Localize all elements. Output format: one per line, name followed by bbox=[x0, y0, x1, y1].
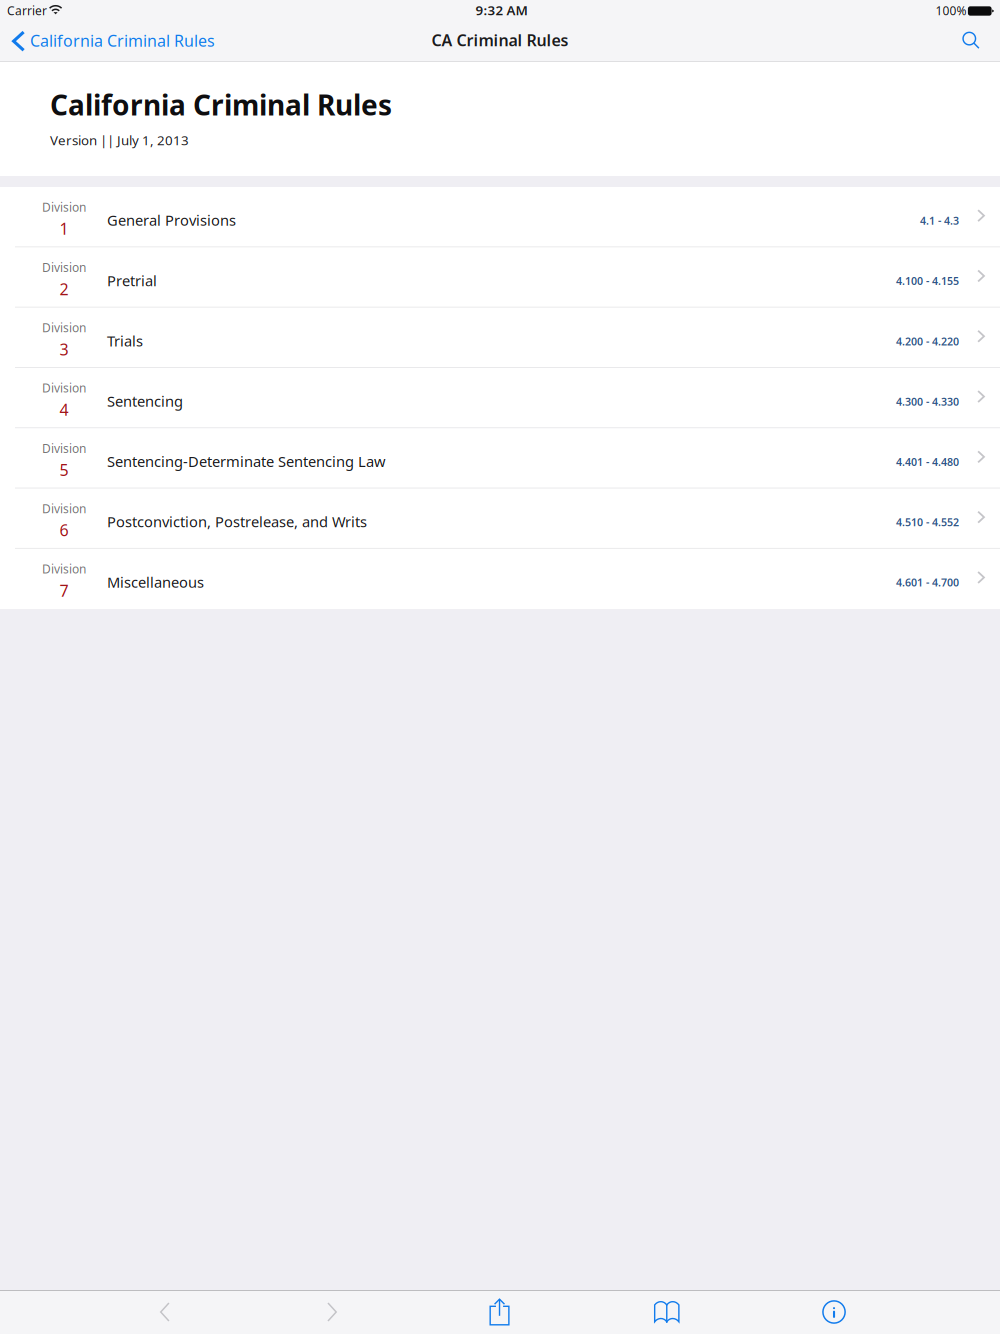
staticText: General Provisions bbox=[107, 210, 236, 230]
staticText: Version || July 1, 2013 bbox=[50, 131, 189, 149]
staticText: Division bbox=[42, 501, 86, 516]
staticText: Division bbox=[42, 320, 86, 336]
button[interactable]: Bookmarks bbox=[583, 1290, 750, 1334]
staticText: Division bbox=[42, 380, 86, 396]
staticText: California Criminal Rules bbox=[30, 30, 215, 51]
button[interactable]: Division bbox=[0, 247, 1000, 308]
staticText: 4.100 - 4.155 bbox=[896, 274, 959, 288]
staticText: 7 bbox=[59, 580, 68, 601]
staticText: CA Criminal Rules bbox=[431, 29, 568, 51]
staticText: 4.300 - 4.330 bbox=[896, 394, 959, 409]
staticText: 9:32 AM bbox=[475, 1, 527, 19]
button[interactable]: Division bbox=[0, 549, 1000, 609]
button[interactable]: Division bbox=[0, 428, 1000, 488]
staticText: Division bbox=[42, 440, 86, 456]
button[interactable]: Division bbox=[0, 368, 1000, 428]
button[interactable]: Division bbox=[0, 488, 1000, 549]
staticText: 4.401 - 4.480 bbox=[896, 455, 959, 469]
staticText: California Criminal Rules bbox=[50, 86, 392, 123]
button[interactable]: Division bbox=[0, 308, 1000, 368]
staticText: Sentencing-Determinate Sentencing Law bbox=[107, 452, 386, 471]
staticText: Miscellaneous bbox=[107, 572, 204, 592]
staticText: Trials bbox=[107, 331, 143, 350]
staticText: 4.200 - 4.220 bbox=[896, 334, 959, 348]
staticText: Division bbox=[42, 199, 86, 215]
button[interactable]: Info bbox=[750, 1290, 918, 1334]
staticText: Pretrial bbox=[107, 271, 157, 290]
staticText: Carrier bbox=[7, 2, 47, 18]
staticText: 1 bbox=[59, 218, 68, 239]
button[interactable]: Division bbox=[0, 187, 1000, 247]
staticText: 4 bbox=[59, 399, 68, 420]
staticText: Sentencing bbox=[107, 391, 183, 411]
staticText: 6 bbox=[59, 519, 68, 541]
staticText: Postconviction, Postrelease, and Writs bbox=[107, 512, 367, 531]
staticText: 2 bbox=[59, 278, 68, 299]
staticText: 4.601 - 4.700 bbox=[896, 575, 959, 590]
staticText: 4.510 - 4.552 bbox=[896, 515, 959, 529]
staticText: 3 bbox=[59, 339, 68, 360]
staticText: 5 bbox=[59, 459, 68, 480]
staticText: 4.1 - 4.3 bbox=[920, 214, 959, 228]
button[interactable]: Back bbox=[81, 1290, 249, 1334]
button[interactable]: Share bbox=[416, 1290, 583, 1334]
staticText: Division bbox=[42, 561, 86, 577]
staticText: 100% bbox=[935, 2, 966, 18]
button[interactable]: California Criminal Rules bbox=[0, 22, 229, 62]
button[interactable]: Search bbox=[946, 22, 1000, 62]
staticText: Division bbox=[42, 259, 86, 275]
button[interactable]: Forward bbox=[249, 1290, 416, 1334]
